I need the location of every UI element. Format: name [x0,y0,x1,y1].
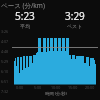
staticText: 4:07 [1,39,9,44]
staticText: 5:00 [34,85,42,90]
staticText: 5:29 [1,59,9,64]
staticText: 20:00 [85,85,95,90]
staticText: 6:51 [1,79,9,84]
staticText: 0:00 [16,85,24,90]
staticText: 6:10 [1,69,9,74]
staticText: 7:32 [1,89,9,94]
staticText: 3:29 [65,9,85,23]
staticText: 4:48 [1,49,9,54]
staticText: 5:23 [15,9,35,23]
staticText: 時間 (分:秒) [12,91,100,97]
staticText: 15:00 [68,85,78,90]
staticText: ベスト [67,23,83,29]
staticText: 3:26 [1,29,9,34]
staticText: 10:00 [51,85,61,90]
staticText: 平均 [20,23,30,29]
staticText: ペース (分/km) [1,1,45,10]
